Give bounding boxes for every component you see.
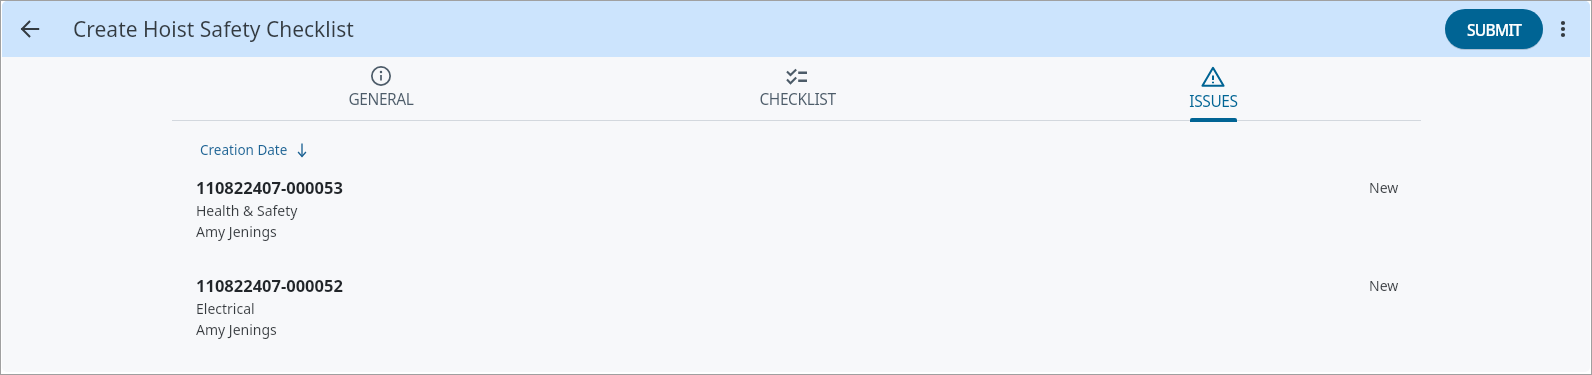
button[interactable]: ISSUES [1005, 57, 1421, 121]
staticText: New [1369, 178, 1399, 197]
button[interactable]: 110822407-000053 [196, 176, 1420, 241]
button[interactable]: SUBMIT [1445, 9, 1543, 49]
staticText: CHECKLIST [759, 88, 836, 109]
button[interactable]: 110822407-000052 [196, 274, 1420, 339]
staticText: Health & Safety [196, 201, 298, 220]
staticText: 110822407-000053 [196, 176, 343, 198]
button[interactable]: GENERAL [172, 57, 589, 121]
staticText: ISSUES [1189, 90, 1238, 111]
staticText: Create Hoist Safety Checklist [73, 15, 354, 44]
button[interactable]: CHECKLIST [589, 57, 1005, 121]
staticText: GENERAL [348, 88, 414, 109]
staticText: Amy Jenings [196, 222, 277, 241]
staticText: Electrical [196, 299, 255, 318]
button[interactable]: Creation Date [200, 141, 309, 159]
staticText: New [1369, 276, 1399, 295]
staticText: Amy Jenings [196, 320, 277, 339]
staticText: 110822407-000052 [196, 274, 343, 296]
button[interactable]: Back [11, 9, 51, 49]
staticText: Creation Date [200, 141, 288, 159]
button[interactable]: More options [1544, 10, 1582, 48]
staticText: SUBMIT [1467, 19, 1522, 40]
